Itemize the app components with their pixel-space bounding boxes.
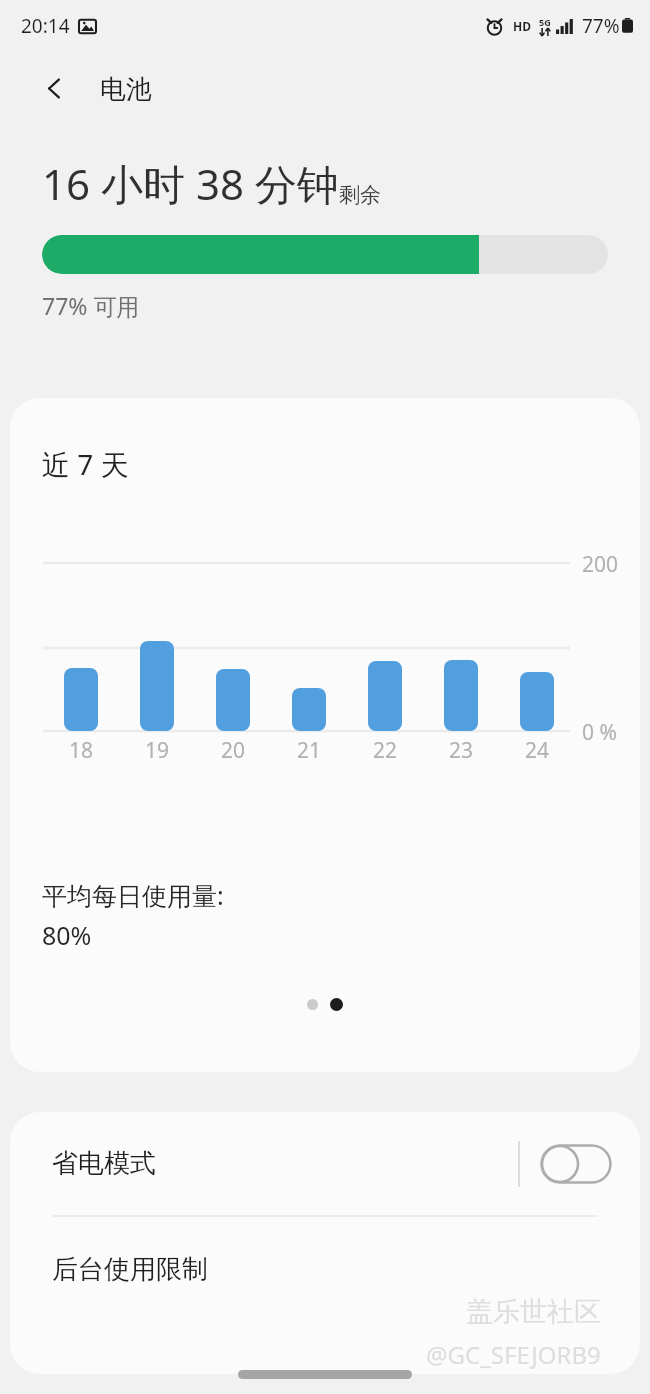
staticText: 剩余 (339, 182, 381, 208)
staticText: 18 (69, 736, 94, 765)
staticText: 20 (221, 736, 246, 765)
staticText: 23 (449, 736, 474, 765)
staticText: 省电模式 (52, 1147, 156, 1180)
staticText: 电池 (100, 73, 152, 106)
button[interactable]: Page 1 (307, 999, 318, 1010)
staticText: 近 7 天 (42, 445, 129, 483)
staticText: 22 (373, 736, 398, 765)
staticText: 16 小时 38 分钟 (42, 155, 339, 212)
staticText: 20:14 (21, 13, 70, 39)
staticText: 后台使用限制 (52, 1253, 208, 1286)
staticText: @GC_SFEJORB9 (426, 1338, 601, 1371)
staticText: HD (513, 18, 531, 34)
button[interactable]: 后台使用限制 (10, 1217, 640, 1321)
staticText: 19 (145, 736, 170, 765)
staticText: 77% 可用 (42, 290, 140, 321)
staticText: 200 (582, 550, 619, 579)
button[interactable]: 近 7 天 (10, 398, 640, 1072)
staticText: 0 % (582, 718, 617, 747)
staticText: 77% (582, 13, 620, 39)
staticText: 盖乐世社区 (466, 1295, 601, 1329)
button[interactable]: Page 2 (330, 998, 343, 1011)
staticText: 平均每日使用量: (42, 878, 224, 912)
button[interactable]: Back (30, 64, 78, 112)
staticText: 21 (297, 736, 322, 765)
button[interactable]: 省电模式 (10, 1112, 640, 1215)
staticText: 5G (539, 16, 551, 28)
staticText: 80% (42, 918, 92, 952)
staticText: 24 (525, 736, 550, 765)
button[interactable]: Power saving toggle (540, 1144, 612, 1184)
